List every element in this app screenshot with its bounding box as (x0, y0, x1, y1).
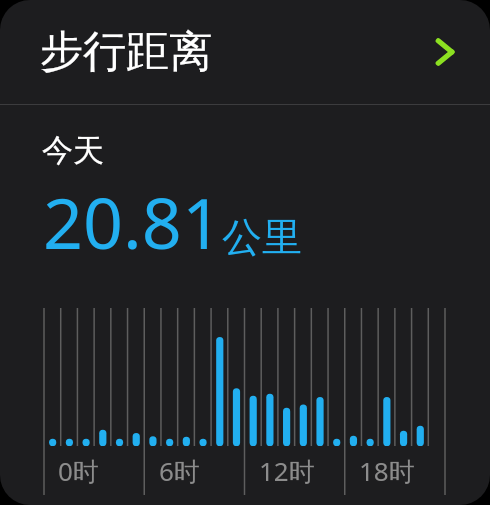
staticText: 公里 (222, 212, 302, 262)
button[interactable]: 步行距离 (0, 0, 490, 104)
staticText: 0时 (58, 453, 99, 489)
staticText: 今天 (42, 131, 104, 170)
staticText: 步行距离 (40, 25, 212, 79)
staticText: 20.81 (43, 174, 222, 269)
staticText: 18时 (359, 453, 415, 489)
staticText: 12时 (259, 453, 315, 489)
other: 查看详情 (426, 34, 462, 70)
staticText: 6时 (159, 453, 200, 489)
